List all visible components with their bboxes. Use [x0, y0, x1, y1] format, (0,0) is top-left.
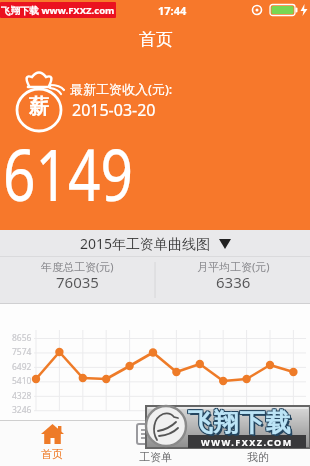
staticText: 3246 — [12, 404, 32, 416]
staticText: 飞翔下载 — [188, 408, 292, 439]
staticText: 薪 — [29, 94, 49, 119]
staticText: 飞翔下载 — [187, 407, 291, 438]
staticText: 17:44 — [158, 3, 187, 18]
button[interactable]: 我的 — [216, 421, 300, 465]
button[interactable]: 2015年工资单曲线图 — [0, 230, 310, 256]
staticText: 7574 — [12, 346, 32, 358]
staticText: 8656 — [12, 332, 32, 344]
staticText: 6149 — [3, 124, 133, 222]
staticText: 5410 — [12, 375, 32, 387]
staticText: 4328 — [12, 390, 32, 402]
staticText: 飞翔下载 — [189, 409, 293, 440]
button[interactable]: 首页 — [10, 421, 94, 465]
staticText: 飞翔下载 — [187, 408, 291, 439]
staticText: 飞翔下载 — [188, 406, 292, 437]
staticText: 飞翔下载 — [186, 406, 290, 437]
staticText: 最新工资收入(元): — [70, 80, 173, 98]
staticText: WWW.FXXZ.COM — [201, 436, 293, 448]
staticText: 飞翔下载 www.FXXZ.com — [1, 4, 115, 17]
staticText: 2015-03-20 — [72, 99, 156, 121]
staticText: 6492 — [12, 361, 32, 373]
staticText: 首页 — [139, 29, 173, 50]
staticText: 飞翔下载 — [188, 407, 292, 438]
staticText: 月平均工资(元) — [197, 259, 270, 274]
staticText: 2015年工资单曲线图 — [80, 234, 211, 253]
button[interactable]: 工资单 — [113, 421, 197, 465]
staticText: 工资单 — [139, 450, 172, 464]
staticText: 首页 — [41, 447, 63, 461]
staticText: 飞翔下载 — [187, 406, 291, 437]
staticText: 76035 — [56, 272, 99, 292]
staticText: 飞翔下载 — [186, 407, 290, 438]
staticText: 飞翔下载 — [186, 408, 290, 439]
staticText: 年度总工资(元) — [41, 259, 114, 274]
staticText: 6336 — [216, 272, 251, 292]
staticText: 我的 — [247, 450, 269, 464]
